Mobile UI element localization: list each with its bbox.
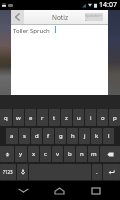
staticText: m bbox=[91, 150, 97, 158]
staticText: h bbox=[71, 132, 75, 140]
staticText: Speichern bbox=[85, 13, 103, 21]
button[interactable]: o bbox=[97, 109, 108, 126]
button[interactable]: w bbox=[13, 109, 24, 126]
staticText: p bbox=[113, 114, 117, 122]
button[interactable]: c bbox=[40, 146, 51, 162]
button[interactable]: t bbox=[49, 109, 60, 126]
button[interactable]: y bbox=[15, 146, 27, 162]
staticText: ?123 bbox=[3, 169, 13, 175]
button[interactable]: l bbox=[103, 128, 114, 144]
button[interactable]: Backspace bbox=[100, 146, 120, 162]
button[interactable]: d bbox=[31, 128, 42, 144]
button[interactable]: . bbox=[92, 164, 102, 180]
staticText: . bbox=[96, 168, 98, 176]
staticText: n bbox=[80, 150, 84, 158]
button[interactable]: Voice input bbox=[17, 164, 28, 180]
button[interactable]: n bbox=[76, 146, 87, 162]
staticText: r bbox=[41, 114, 44, 122]
staticText: v bbox=[56, 150, 60, 158]
staticText: f bbox=[47, 132, 50, 140]
staticText: z bbox=[65, 114, 68, 122]
button[interactable]: p bbox=[109, 109, 120, 126]
button[interactable]: Speichern bbox=[85, 13, 103, 21]
staticText: c bbox=[44, 150, 47, 158]
staticText: s bbox=[23, 132, 26, 140]
button[interactable]: b bbox=[64, 146, 75, 162]
button[interactable]: Recent apps bbox=[83, 181, 109, 200]
button[interactable]: Back bbox=[11, 10, 24, 24]
staticText: j bbox=[84, 132, 86, 140]
button[interactable]: ?123 bbox=[0, 164, 16, 180]
button[interactable]: f bbox=[43, 128, 54, 144]
staticText: u bbox=[77, 114, 81, 122]
staticText: g bbox=[59, 132, 63, 140]
button[interactable]: i bbox=[85, 109, 96, 126]
button[interactable]: e bbox=[25, 109, 36, 126]
button[interactable]: m bbox=[88, 146, 99, 162]
button[interactable]: g bbox=[55, 128, 66, 144]
button[interactable]: Shift bbox=[0, 146, 14, 162]
staticText: k bbox=[95, 132, 99, 140]
staticText: l bbox=[108, 132, 110, 140]
button[interactable]: j bbox=[79, 128, 90, 144]
staticText: x bbox=[32, 150, 36, 158]
button[interactable]: q bbox=[0, 109, 12, 126]
staticText: t bbox=[53, 114, 56, 122]
staticText: Toller Spruch bbox=[13, 27, 50, 35]
staticText: o bbox=[101, 114, 105, 122]
staticText: Notiz bbox=[52, 13, 68, 22]
button[interactable]: h bbox=[67, 128, 78, 144]
button[interactable]: a bbox=[6, 128, 18, 144]
button[interactable]: Back bbox=[10, 181, 36, 200]
button[interactable]: u bbox=[73, 109, 84, 126]
staticText: 14:07 bbox=[99, 0, 117, 10]
staticText: y bbox=[19, 150, 23, 158]
button[interactable]: z bbox=[61, 109, 72, 126]
staticText: b bbox=[68, 150, 72, 158]
staticText: q bbox=[4, 114, 8, 122]
button[interactable]: r bbox=[37, 109, 48, 126]
button[interactable]: v bbox=[52, 146, 63, 162]
staticText: e bbox=[29, 114, 33, 122]
button[interactable]: Enter bbox=[103, 164, 120, 180]
staticText: w bbox=[16, 114, 21, 122]
staticText: d bbox=[35, 132, 39, 140]
button[interactable]: Home bbox=[46, 181, 72, 200]
button[interactable]: k bbox=[91, 128, 102, 144]
staticText: i bbox=[90, 114, 92, 122]
button[interactable]: x bbox=[28, 146, 39, 162]
button[interactable]: s bbox=[19, 128, 30, 144]
staticText: a bbox=[10, 132, 14, 140]
